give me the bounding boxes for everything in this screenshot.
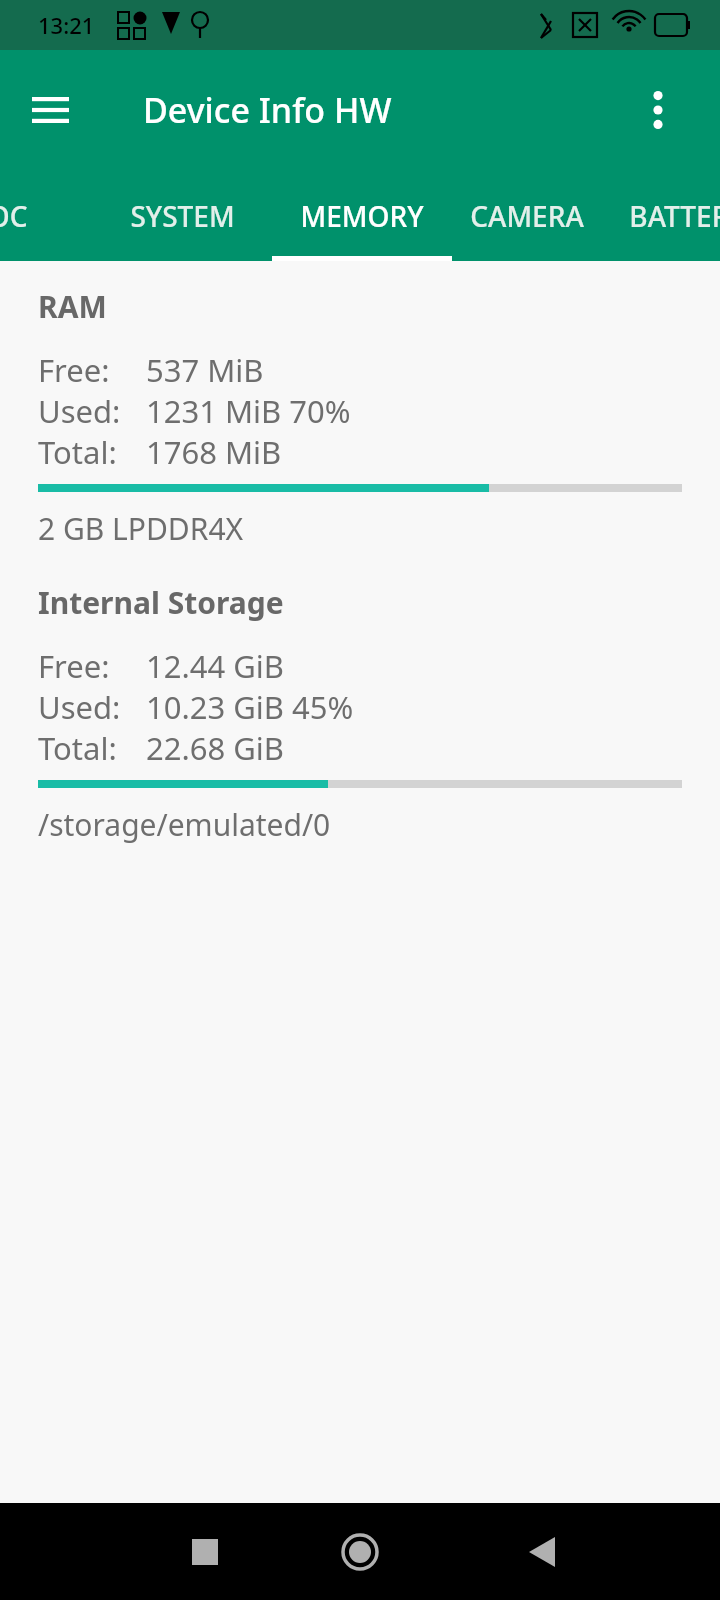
button[interactable]: SOC <box>0 170 60 261</box>
staticText: Free: <box>38 645 146 686</box>
staticText: 12.44 GiB <box>146 645 285 686</box>
staticText: Used: <box>38 686 146 727</box>
staticText: SOC <box>0 197 28 235</box>
staticText: RAM <box>38 286 107 327</box>
staticText: 13:21 <box>38 10 95 40</box>
staticText: SYSTEM <box>130 197 235 235</box>
staticText: Device Info HW <box>143 87 392 133</box>
staticText: /storage/emulated/0 <box>38 804 331 845</box>
staticText: 1231 MiB 70% <box>146 390 351 431</box>
button[interactable]: MEMORY <box>272 170 452 261</box>
staticText: 2 GB LPDDR4X <box>38 508 244 549</box>
staticText: Total: <box>38 727 146 768</box>
button[interactable]: Back <box>494 1504 590 1600</box>
staticText: 22.68 GiB <box>146 727 285 768</box>
staticText: 1768 MiB <box>146 431 282 472</box>
button[interactable]: Home <box>312 1504 408 1600</box>
staticText: 10.23 GiB 45% <box>146 686 354 727</box>
staticText: Free: <box>38 349 146 390</box>
button[interactable]: More options <box>622 74 694 146</box>
staticText: Internal Storage <box>38 582 284 623</box>
staticText: Total: <box>38 431 146 472</box>
button[interactable]: BATTERY <box>602 170 720 261</box>
button[interactable]: Open navigation menu <box>14 74 86 146</box>
button[interactable]: Recent apps <box>157 1504 253 1600</box>
staticText: Used: <box>38 390 146 431</box>
staticText: 537 MiB <box>146 349 264 390</box>
staticText: BATTERY <box>629 197 720 235</box>
staticText: MEMORY <box>300 197 424 235</box>
button[interactable]: SYSTEM <box>84 170 280 261</box>
staticText: CAMERA <box>470 197 584 235</box>
button[interactable]: CAMERA <box>452 170 602 261</box>
